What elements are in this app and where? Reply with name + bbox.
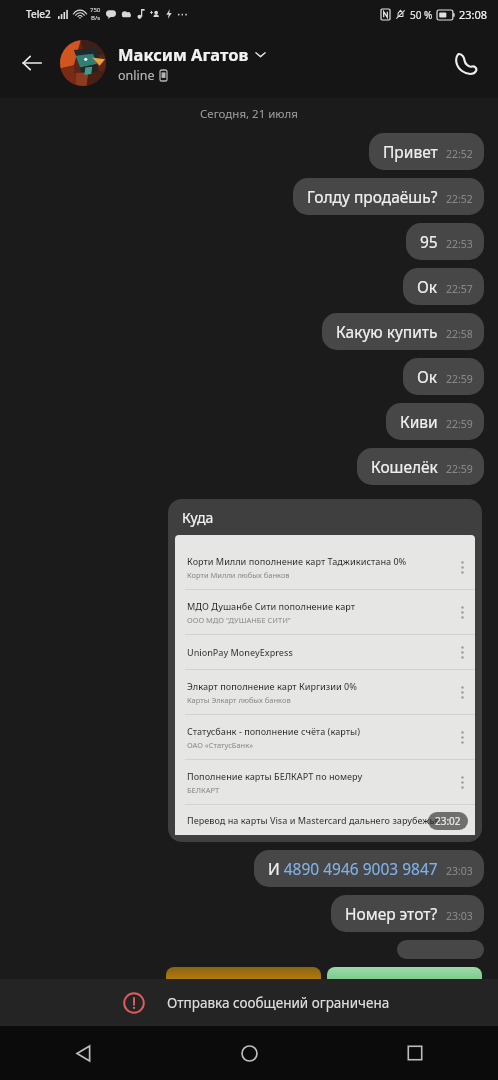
button[interactable]: Статусбанк - пополнение счёта (карты) (175, 715, 475, 759)
staticText: B/s (91, 14, 101, 22)
button[interactable]: More options (449, 715, 475, 759)
staticText: 750 (90, 6, 101, 14)
button[interactable]: Кошелёк (357, 448, 484, 485)
staticText: Голду продаёшь? (307, 186, 438, 207)
staticText: Ок (417, 276, 438, 297)
staticText: БЕЛКАРТ (187, 785, 220, 795)
staticText: Куда (182, 508, 214, 527)
button[interactable]: Куда (168, 499, 482, 842)
staticText: Ок (417, 366, 438, 387)
staticText: 23:02 (435, 814, 461, 828)
staticText: Tele2 (26, 7, 51, 21)
staticText: 23:08 (459, 7, 488, 22)
staticText: Пополнение карты БЕЛКАРТ по номеру (187, 770, 363, 782)
button[interactable]: More options (449, 545, 475, 589)
staticText: ООО МДО "ДУШАНБЕ СИТИ" (187, 615, 291, 625)
staticText: Максим Агатов (118, 43, 249, 65)
staticText: И 4890 4946 9003 9847 (268, 858, 438, 879)
staticText: Отправка сообщений ограничена (167, 994, 390, 1012)
staticText: ⋯ (177, 8, 188, 21)
staticText: 22:59 (446, 372, 473, 386)
staticText: Корти Милли пополнение карт Таджикистана… (187, 555, 407, 567)
staticText: Номер этот? (345, 903, 438, 924)
button[interactable]: More options (449, 670, 475, 714)
staticText: Перевод на карты Visa и Mastercard дальн… (187, 814, 440, 826)
staticText: Какую купить (336, 321, 438, 342)
button[interactable]: Call (442, 40, 488, 86)
staticText: Карты Элкарт любых банков (187, 695, 291, 705)
button[interactable]: И 4890 4946 9003 9847 (254, 850, 484, 887)
staticText: Элкарт пополнение карт Киргизии 0% (187, 680, 357, 692)
button[interactable]: МДО Душанбе Сити пополнение карт (175, 590, 475, 634)
staticText: Статусбанк - пополнение счёта (карты) (187, 725, 360, 737)
staticText: 22:52 (446, 147, 473, 161)
button[interactable]: Привет (369, 133, 484, 170)
staticText: Сегодня, 21 июля (200, 106, 298, 122)
button[interactable]: Элкарт пополнение карт Киргизии 0% (175, 670, 475, 714)
button[interactable]: Ок (403, 268, 484, 305)
staticText: 23:03 (446, 909, 473, 923)
staticText: 22:59 (446, 462, 473, 476)
button[interactable]: Home (166, 1026, 332, 1080)
button[interactable]: Какую купить (322, 313, 484, 350)
staticText: 22:52 (446, 192, 473, 206)
staticText: online (118, 67, 155, 84)
staticText: Привет (383, 141, 438, 162)
staticText: Корти Милли любых банков (187, 570, 290, 580)
button[interactable]: More options (449, 635, 475, 669)
button[interactable]: 95 (406, 223, 484, 260)
button[interactable]: Номер этот? (331, 895, 484, 932)
staticText: 22:57 (446, 282, 473, 296)
staticText: ОАО «СтатусБанк» (187, 740, 254, 750)
button[interactable]: Back (0, 1026, 166, 1080)
button[interactable]: More options (449, 760, 475, 804)
button[interactable]: Recent apps (332, 1026, 498, 1080)
button[interactable]: Action (327, 967, 482, 979)
button[interactable]: Всё (397, 940, 484, 959)
button[interactable]: Back (10, 41, 54, 85)
staticText: 22:59 (446, 417, 473, 431)
button[interactable]: More options (449, 590, 475, 634)
staticText: 22:58 (446, 327, 473, 341)
button[interactable]: Корти Милли пополнение карт Таджикистана… (175, 545, 475, 589)
staticText: 50 % (410, 8, 433, 22)
button[interactable]: Action (166, 967, 321, 979)
staticText: 95 (420, 231, 438, 252)
staticText: Киви (400, 411, 438, 432)
button[interactable]: Максим Агатов (60, 40, 442, 86)
button[interactable]: UnionPay MoneyExpress (175, 635, 475, 669)
staticText: 23:03 (446, 864, 473, 878)
staticText: UnionPay MoneyExpress (187, 646, 293, 658)
staticText: Кошелёк (371, 456, 438, 477)
staticText: 22:53 (446, 237, 473, 251)
staticText: МДО Душанбе Сити пополнение карт (187, 600, 356, 612)
button[interactable]: Ок (403, 358, 484, 395)
button[interactable]: Киви (386, 403, 484, 440)
button[interactable]: Голду продаёшь? (293, 178, 484, 215)
button[interactable]: Пополнение карты БЕЛКАРТ по номеру (175, 760, 475, 804)
